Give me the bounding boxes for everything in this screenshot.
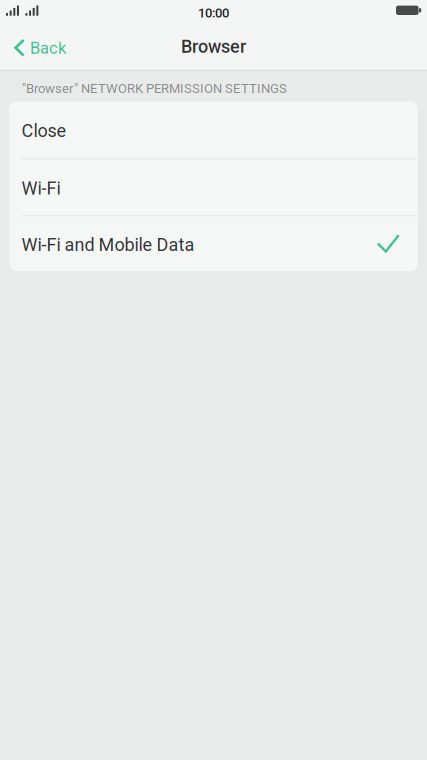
staticText: "Browser" NETWORK PERMISSION SETTINGS bbox=[22, 81, 287, 96]
button[interactable]: Close bbox=[9, 101, 418, 158]
staticText: Back bbox=[30, 38, 66, 58]
button[interactable]: Back bbox=[0, 26, 74, 70]
staticText: 10:00 bbox=[198, 5, 229, 21]
button[interactable]: Wi-Fi bbox=[9, 159, 418, 215]
staticText: Wi-Fi and Mobile Data bbox=[21, 234, 194, 255]
staticText: Browser bbox=[181, 36, 246, 57]
button[interactable]: Wi-Fi and Mobile Data bbox=[9, 216, 418, 271]
staticText: Close bbox=[21, 120, 66, 141]
staticText: Wi-Fi bbox=[21, 178, 60, 199]
